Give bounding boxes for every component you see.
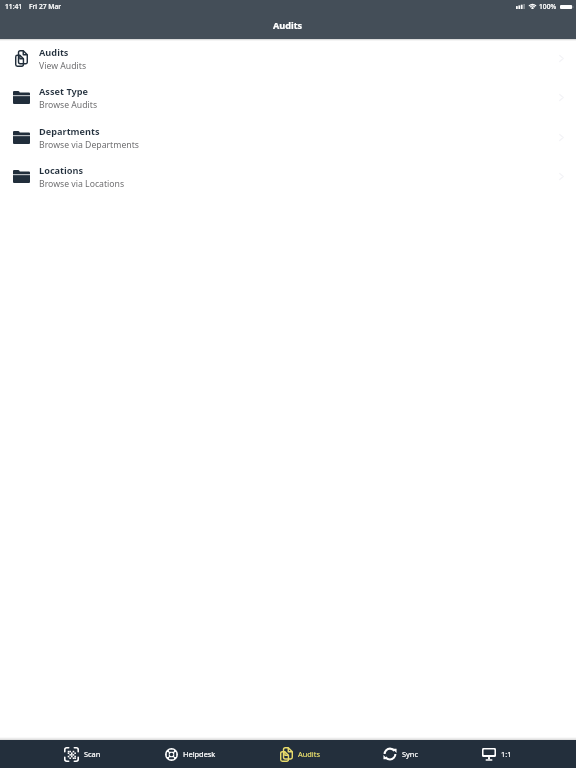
button[interactable]: Audits [280, 740, 320, 768]
staticText: Audits [39, 46, 69, 59]
staticText: Helpdesk [183, 749, 216, 759]
staticText: 11:41 [5, 2, 23, 11]
staticText: Audits [298, 749, 320, 759]
staticText: Locations [39, 164, 84, 177]
staticText: Departments [39, 125, 100, 138]
staticText: View Audits [39, 60, 87, 72]
staticText: Browse via Locations [39, 178, 125, 190]
button[interactable]: Scan [64, 740, 101, 768]
staticText: 100% [539, 2, 557, 11]
button[interactable]: Audits [0, 39, 576, 78]
staticText: 1:1 [501, 749, 512, 759]
staticText: Scan [84, 749, 101, 759]
staticText: Browse via Departments [39, 139, 139, 151]
button[interactable]: Sync [383, 740, 418, 768]
staticText: Audits [273, 19, 303, 31]
button[interactable]: Asset Type [0, 78, 576, 117]
button[interactable]: Helpdesk [165, 740, 216, 768]
button[interactable]: Departments [0, 118, 576, 157]
staticText: Browse Audits [39, 99, 98, 111]
staticText: Fri 27 Mar [29, 2, 62, 11]
button[interactable]: Locations [0, 157, 576, 196]
staticText: Asset Type [39, 85, 89, 98]
staticText: Sync [402, 749, 418, 759]
button[interactable]: 1:1 [482, 740, 512, 768]
